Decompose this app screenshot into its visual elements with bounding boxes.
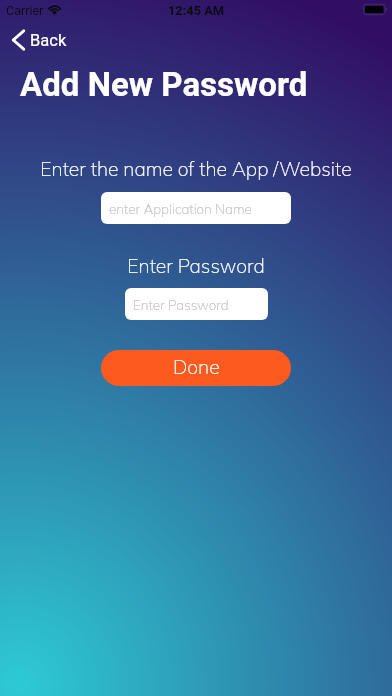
staticText: Carrier [6, 3, 44, 18]
staticText: Enter Password [133, 296, 229, 313]
staticText: Enter the name of the App /Website [0, 157, 392, 181]
staticText: Done [173, 354, 220, 378]
other: Back [10, 29, 24, 51]
other: Wi-Fi [47, 5, 62, 14]
button[interactable]: Done [101, 350, 291, 386]
staticText: 12:45 AM [0, 3, 392, 18]
other: Battery full [362, 3, 388, 16]
staticText: Add New Password [20, 65, 308, 104]
button[interactable]: Back [10, 28, 67, 52]
staticText: Enter Password [0, 254, 392, 278]
staticText: enter Application Name [109, 200, 252, 217]
button[interactable]: Enter Password [125, 288, 268, 320]
staticText: Back [30, 31, 67, 50]
button[interactable]: enter Application Name [101, 192, 291, 224]
